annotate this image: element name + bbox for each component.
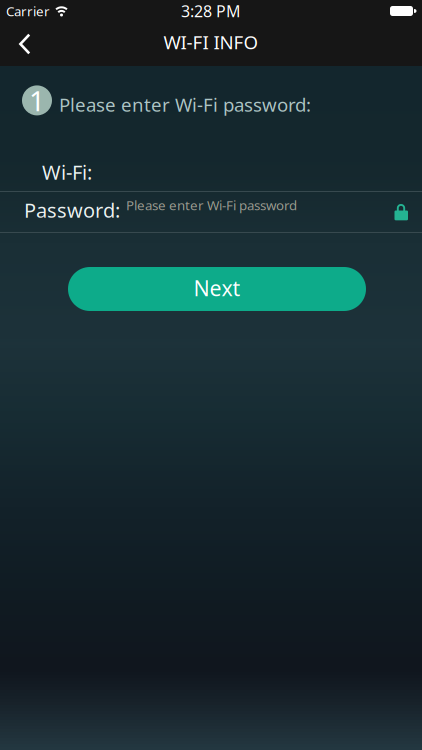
staticText: Password: [24,197,120,223]
button[interactable]: Next [68,267,366,311]
staticText: Next [193,274,240,302]
button[interactable]: Back [0,22,46,66]
staticText: Carrier [6,2,50,20]
staticText: Please enter Wi-Fi password [126,196,297,214]
textField[interactable]: Please enter Wi-Fi password [126,196,372,214]
staticText: Please enter Wi-Fi password: [59,92,311,117]
staticText: 3:28 PM [181,0,241,22]
staticText: Wi-Fi: [42,159,92,185]
staticText: WI-FI INFO [163,30,258,54]
staticText: 1 [29,82,45,119]
